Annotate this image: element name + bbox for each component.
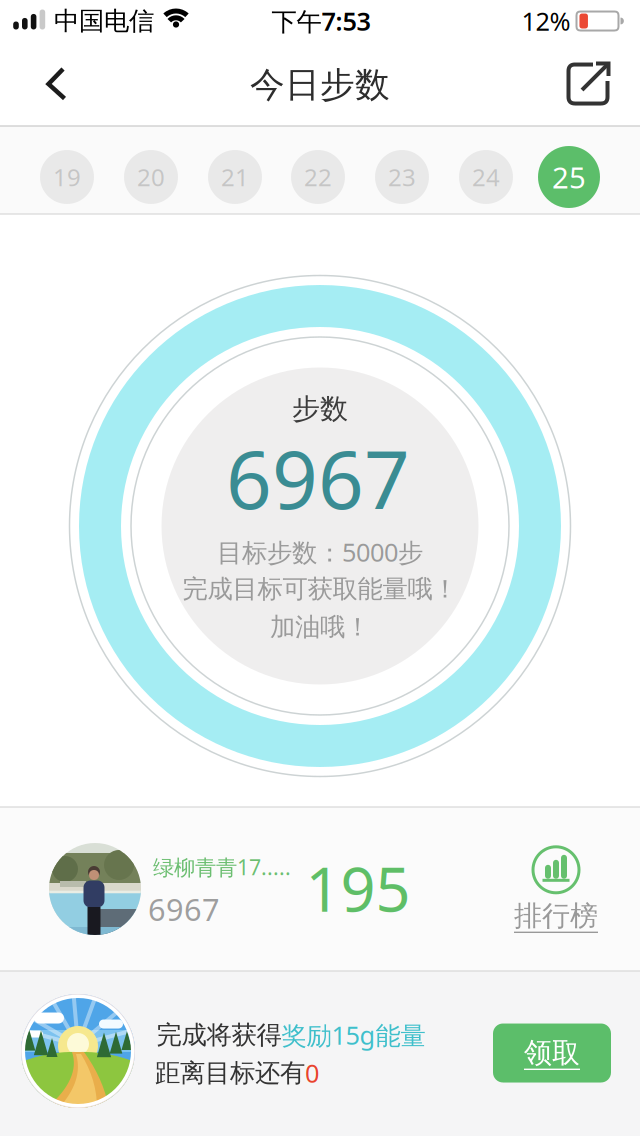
staticText: 奖励15g能量 — [281, 1018, 425, 1052]
staticText: 24 — [472, 161, 500, 193]
staticText: 20 — [137, 161, 165, 193]
button[interactable]: 21 — [208, 150, 262, 204]
staticText: 0 — [305, 1056, 319, 1090]
button[interactable]: 23 — [375, 150, 429, 204]
button[interactable]: 25 — [538, 146, 600, 208]
button[interactable]: Share — [560, 56, 616, 112]
staticText: 6967 — [148, 889, 220, 929]
staticText: 21 — [221, 161, 249, 193]
staticText: 排行榜 — [514, 899, 598, 933]
staticText: 步数 — [292, 392, 348, 426]
staticText: 绿柳青青17..... — [153, 853, 291, 881]
button[interactable]: 排行榜 — [501, 839, 611, 939]
staticText: 19 — [53, 161, 81, 193]
staticText: 距离目标还有 — [155, 1057, 305, 1088]
staticText: 25 — [552, 157, 586, 196]
staticText: 中国电信 — [54, 5, 154, 36]
staticText: 今日步数 — [250, 64, 390, 106]
staticText: 领取 — [524, 1036, 580, 1070]
button[interactable]: 24 — [459, 150, 513, 204]
staticText: 12% — [521, 4, 570, 38]
staticText: 195 — [305, 847, 410, 929]
staticText: 22 — [304, 161, 332, 193]
staticText: 目标步数：5000步 — [217, 535, 423, 569]
staticText: 下午7:53 — [271, 4, 370, 38]
button[interactable]: 19 — [40, 150, 94, 204]
staticText: 完成将获得 — [156, 1019, 281, 1050]
button[interactable]: Back — [34, 56, 78, 112]
staticText: 加油哦！ — [270, 611, 370, 642]
staticText: 6967 — [226, 425, 410, 531]
staticText: 完成目标可获取能量哦！ — [182, 573, 457, 604]
staticText: 23 — [388, 161, 416, 193]
button[interactable]: 20 — [124, 150, 178, 204]
button[interactable]: 22 — [291, 150, 345, 204]
button[interactable]: 领取 — [493, 1023, 611, 1082]
